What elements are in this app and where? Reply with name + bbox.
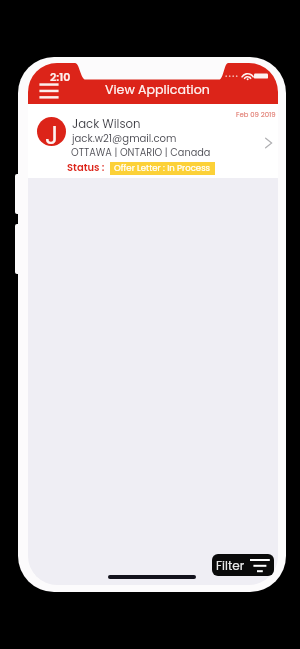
- staticText: J: [45, 118, 59, 153]
- staticText: 2:10: [50, 69, 71, 84]
- button[interactable]: [212, 554, 274, 576]
- staticText: Filter: [216, 557, 245, 574]
- staticText: Jack Wilson: [72, 116, 141, 132]
- staticText: OTTAWA | ONTARIO | Canada: [71, 146, 211, 160]
- staticText: Feb 09 2019: [236, 110, 276, 120]
- button[interactable]: Open navigation menu: [37, 80, 61, 102]
- staticText: Offer Letter : In Process: [114, 162, 211, 174]
- button[interactable]: [28, 104, 278, 178]
- staticText: jack.w21@gmail.com: [72, 131, 177, 145]
- staticText: View Application: [105, 81, 210, 99]
- staticText: Status :: [67, 161, 105, 175]
